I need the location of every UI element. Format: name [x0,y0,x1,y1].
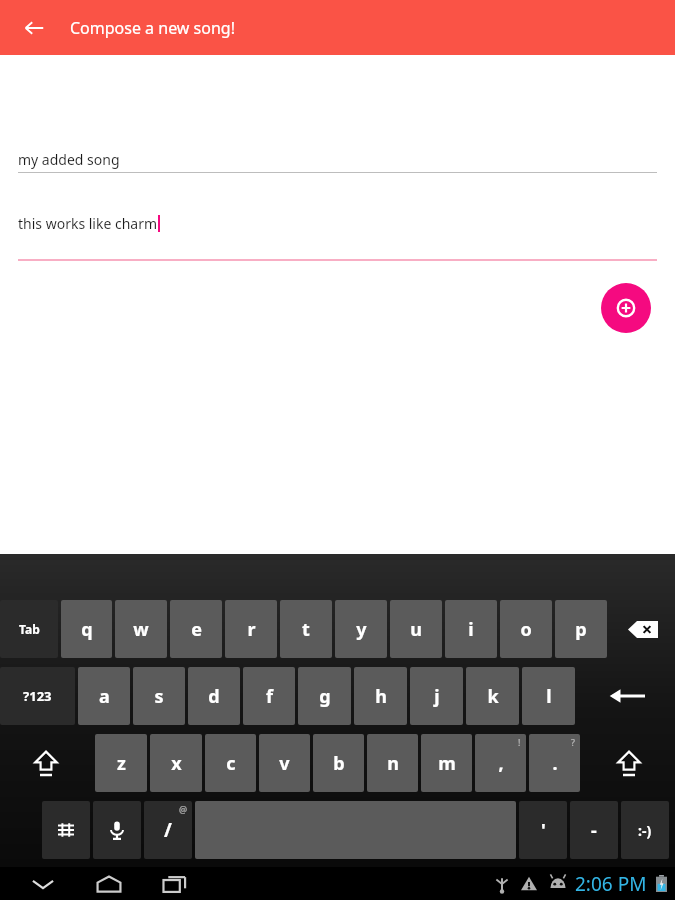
staticText: u [410,617,422,642]
staticText: ?123 [23,687,52,705]
staticText: y [356,617,367,642]
button[interactable]: b [313,734,364,792]
button[interactable]: n [367,734,418,792]
staticText: k [487,684,499,709]
staticText: o [520,617,532,642]
staticText: my added song [18,150,120,169]
button[interactable]: Emoticon [621,801,669,859]
staticText: :-) [638,821,652,840]
button[interactable]: Shift [583,734,675,792]
button[interactable]: c [205,734,256,792]
staticText: c [226,751,236,776]
button[interactable]: . [529,734,580,792]
staticText: q [81,617,93,642]
staticText: r [247,617,256,642]
button[interactable]: Switch keyboard [42,801,90,859]
staticText: l [546,684,552,709]
button[interactable]: d [188,667,240,725]
staticText: f [266,684,273,709]
button[interactable]: p [555,600,607,658]
button[interactable]: Voice input [93,801,141,859]
staticText: 2:06 PM [575,871,647,897]
staticText: p [575,617,587,642]
staticText: / [164,817,172,843]
staticText: i [468,617,474,642]
staticText: g [319,684,331,709]
button[interactable]: Hide keyboard [22,867,64,900]
button[interactable]: Slash [144,801,192,859]
button[interactable]: Symbols [0,667,75,725]
staticText: b [333,751,345,776]
button[interactable]: l [522,667,575,725]
button[interactable]: k [466,667,519,725]
staticText: j [434,684,440,709]
staticText: v [279,751,290,776]
button[interactable]: j [410,667,463,725]
button[interactable]: Recent apps [154,867,196,900]
button[interactable]: y [335,600,387,658]
staticText: n [387,751,399,776]
button[interactable]: a [78,667,130,725]
staticText: e [191,617,202,642]
button[interactable]: , [475,734,526,792]
staticText: ' [541,818,546,843]
button[interactable]: h [354,667,407,725]
staticText: w [133,617,149,642]
staticText: t [302,617,310,642]
button[interactable]: Tab [0,600,58,658]
button[interactable]: Backspace [610,600,675,658]
button[interactable]: Shift [0,734,92,792]
button[interactable]: i [445,600,497,658]
staticText: Compose a new song! [70,17,235,39]
button[interactable]: r [225,600,277,658]
staticText: x [171,751,182,776]
button[interactable]: s [133,667,185,725]
staticText: Tab [19,621,40,637]
button[interactable]: t [280,600,332,658]
button[interactable]: q [61,600,112,658]
staticText: s [154,684,164,709]
staticText: , [498,751,504,776]
staticText: a [99,684,110,709]
button[interactable]: e [170,600,222,658]
button[interactable]: g [298,667,351,725]
button[interactable]: Add [601,283,651,333]
staticText: @ [179,803,188,815]
button[interactable]: v [259,734,310,792]
button[interactable]: Home [88,867,130,900]
staticText: z [117,751,126,776]
button[interactable]: Hyphen [570,801,618,859]
button[interactable]: u [390,600,442,658]
button[interactable]: Back [16,10,52,46]
staticText: . [552,751,558,776]
button[interactable]: z [95,734,147,792]
button[interactable]: Enter [578,667,675,725]
button[interactable]: m [421,734,472,792]
staticText: d [208,684,220,709]
staticText: h [375,684,387,709]
button[interactable]: o [500,600,552,658]
staticText: m [438,751,456,776]
button[interactable]: Apostrophe [519,801,567,859]
button[interactable]: x [150,734,202,792]
staticText: - [591,818,597,843]
button[interactable]: w [115,600,167,658]
staticText: ? [571,736,575,748]
staticText: ! [518,736,521,748]
staticText: this works like charm [18,214,158,233]
button[interactable]: f [243,667,295,725]
